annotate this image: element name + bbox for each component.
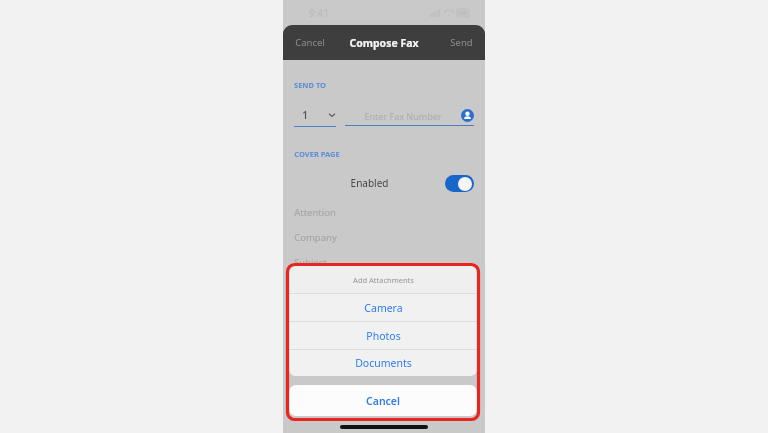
- button[interactable]: Camera: [289, 294, 477, 321]
- staticText: 1: [302, 108, 308, 122]
- other: Contacts: [461, 109, 474, 122]
- staticText: Cancel: [295, 36, 325, 49]
- button[interactable]: Cancel: [289, 385, 477, 416]
- other: Cover page toggle: [445, 175, 474, 192]
- staticText: Company: [294, 231, 337, 244]
- button[interactable]: Send: [446, 32, 477, 53]
- staticText: Cancel: [366, 394, 400, 408]
- button[interactable]: Cancel: [291, 32, 329, 53]
- staticText: Enabled: [294, 176, 445, 190]
- button[interactable]: Enabled: [283, 171, 485, 195]
- staticText: Camera: [364, 301, 403, 315]
- staticText: Attention: [294, 206, 336, 219]
- staticText: Photos: [366, 329, 401, 343]
- other: Expand: [328, 111, 336, 119]
- staticText: Send: [450, 36, 473, 49]
- staticText: SEND TO: [294, 80, 326, 90]
- staticText: Subject: [294, 256, 327, 269]
- button[interactable]: Documents: [289, 350, 477, 376]
- staticText: Compose Fax: [349, 36, 419, 50]
- staticText: 9:41: [309, 6, 329, 20]
- staticText: Add Attachments: [353, 275, 414, 285]
- button[interactable]: Photos: [289, 322, 477, 349]
- staticText: Enter Fax Number: [345, 110, 461, 122]
- staticText: Documents: [355, 356, 412, 370]
- staticText: COVER PAGE: [294, 149, 340, 159]
